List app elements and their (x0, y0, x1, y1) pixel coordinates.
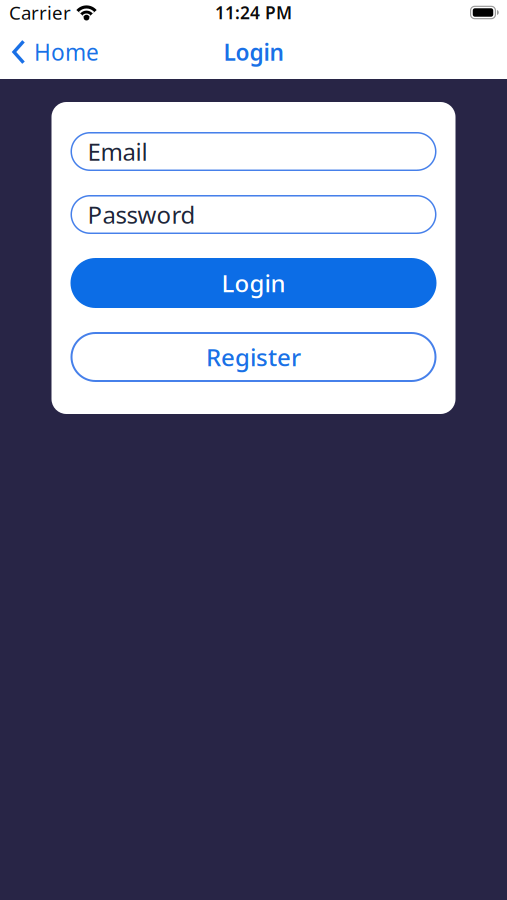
staticText: Email (87, 136, 147, 167)
staticText: 11:24 PM (215, 1, 292, 24)
button[interactable]: Home (12, 37, 99, 67)
button[interactable]: Login (70, 258, 436, 308)
staticText: Home (34, 37, 99, 67)
staticText: Password (87, 199, 195, 230)
button[interactable]: Register (70, 332, 436, 382)
staticText: Register (206, 341, 301, 373)
staticText: Login (223, 37, 283, 67)
button[interactable]: Password (70, 195, 436, 234)
button[interactable]: Email (70, 132, 436, 171)
staticText: Carrier (9, 0, 71, 25)
staticText: Login (221, 267, 285, 299)
